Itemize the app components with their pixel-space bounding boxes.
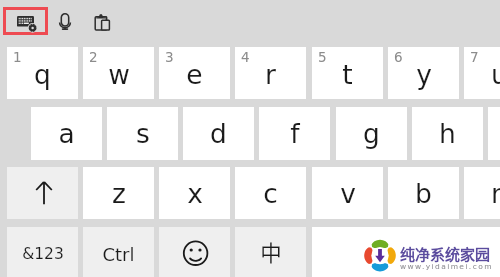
staticText: 3 xyxy=(165,49,174,65)
button[interactable]: a xyxy=(31,107,102,160)
staticText: 中 xyxy=(260,236,282,267)
button[interactable]: Space xyxy=(312,227,500,277)
staticText: w xyxy=(108,59,130,90)
staticText: 纯净系统家园 xyxy=(400,243,491,265)
staticText: b xyxy=(415,178,432,209)
button[interactable]: 4 xyxy=(235,47,306,99)
button[interactable]: v xyxy=(312,167,383,219)
button[interactable]: Emoji xyxy=(159,227,230,277)
button[interactable]: 1 xyxy=(7,47,78,99)
staticText: x xyxy=(187,178,203,209)
staticText: 1 xyxy=(13,49,22,65)
button[interactable]: n xyxy=(464,167,500,219)
button[interactable]: g xyxy=(336,107,407,160)
staticText: v xyxy=(340,178,356,209)
staticText: n xyxy=(491,178,500,209)
button[interactable]: x xyxy=(159,167,230,219)
staticText: 7 xyxy=(470,49,479,65)
staticText: Ctrl xyxy=(102,244,135,265)
button[interactable]: c xyxy=(235,167,306,219)
staticText: www.yidaimei.com xyxy=(400,262,493,271)
button[interactable]: Shift xyxy=(7,167,78,219)
button[interactable]: 2 xyxy=(83,47,154,99)
staticText: h xyxy=(439,118,456,149)
button[interactable]: Ctrl xyxy=(83,227,154,277)
button[interactable]: Voice input xyxy=(59,13,71,30)
button[interactable]: f xyxy=(259,107,330,160)
button[interactable]: Keyboard settings xyxy=(3,7,48,35)
staticText: 2 xyxy=(89,49,98,65)
button[interactable]: &123 xyxy=(7,227,78,277)
staticText: s xyxy=(136,118,150,149)
staticText: a xyxy=(58,118,75,149)
button[interactable]: b xyxy=(388,167,459,219)
button[interactable]: 5 xyxy=(312,47,383,99)
staticText: r xyxy=(265,59,276,90)
button[interactable]: z xyxy=(83,167,154,219)
staticText: z xyxy=(112,178,126,209)
button[interactable]: 3 xyxy=(159,47,230,99)
staticText: &123 xyxy=(22,245,64,263)
staticText: 6 xyxy=(394,49,403,65)
staticText: q xyxy=(34,59,51,90)
staticText: y xyxy=(416,59,432,90)
staticText: f xyxy=(290,118,300,149)
button[interactable]: 7 xyxy=(464,47,500,99)
button[interactable]: d xyxy=(183,107,254,160)
staticText: c xyxy=(263,178,278,209)
staticText: u xyxy=(491,59,500,90)
button[interactable]: h xyxy=(412,107,483,160)
staticText: t xyxy=(342,59,353,90)
button[interactable]: Clipboard xyxy=(95,14,111,32)
staticText: d xyxy=(210,118,227,149)
staticText: 5 xyxy=(318,49,327,65)
button[interactable]: 中 xyxy=(235,227,306,277)
button[interactable]: s xyxy=(107,107,178,160)
staticText: e xyxy=(186,59,203,90)
staticText: g xyxy=(363,118,380,149)
button[interactable]: 6 xyxy=(388,47,459,99)
staticText: 4 xyxy=(241,49,250,65)
